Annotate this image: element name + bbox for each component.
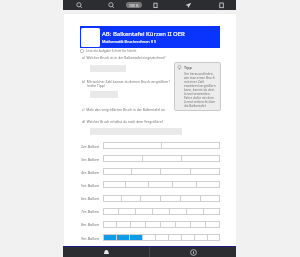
button[interactable] <box>103 208 118 215</box>
button[interactable] <box>162 142 220 149</box>
staticText: d) Welcher Bruch erhältst du nach dem Ve… <box>82 119 164 123</box>
button[interactable] <box>181 195 200 202</box>
button[interactable] <box>187 208 203 215</box>
button[interactable] <box>204 208 220 215</box>
button[interactable] <box>191 168 220 175</box>
button[interactable] <box>197 181 220 188</box>
button[interactable] <box>136 208 152 215</box>
button[interactable]: Download <box>217 1 225 9</box>
button[interactable] <box>103 195 121 202</box>
button[interactable] <box>117 221 130 228</box>
button[interactable] <box>146 221 160 228</box>
button[interactable]: Tipp <box>174 62 221 111</box>
button[interactable] <box>161 168 190 175</box>
button[interactable] <box>149 181 172 188</box>
staticText: c) Male den vergrößerten Bruch in der Ba… <box>82 107 166 111</box>
button[interactable] <box>201 195 220 202</box>
staticText: Mathematik Bruchrechnen R 5 <box>102 39 157 44</box>
button[interactable] <box>117 234 129 241</box>
button[interactable] <box>126 181 148 188</box>
button[interactable]: 100 % <box>126 2 142 8</box>
button[interactable] <box>132 168 160 175</box>
staticText: 8er-Balken <box>81 222 100 227</box>
button[interactable] <box>103 168 131 175</box>
staticText: 5er-Balken <box>81 183 100 188</box>
button[interactable] <box>131 221 145 228</box>
button[interactable]: Print <box>151 1 159 9</box>
staticText: AB: Balkentafel Kürzen II OER <box>102 30 185 38</box>
button[interactable] <box>103 221 116 228</box>
staticText: 2er-Balken <box>81 144 100 149</box>
button[interactable] <box>170 208 186 215</box>
staticText: Um herauszufinden, wie man einen Bruch m… <box>184 72 217 108</box>
button[interactable] <box>103 142 161 149</box>
button[interactable]: Info <box>150 247 236 257</box>
button[interactable] <box>143 155 181 162</box>
staticText: 3er-Balken <box>81 157 100 162</box>
button[interactable]: AB: Balkentafel Kürzen II OER <box>80 26 220 48</box>
button[interactable]: Upload <box>63 247 149 257</box>
staticText: 9er-Balken <box>81 236 100 241</box>
button[interactable] <box>182 155 220 162</box>
button[interactable]: Zoom in <box>75 1 83 9</box>
button[interactable]: Share <box>184 1 192 9</box>
staticText: 100 % <box>129 3 139 8</box>
staticText: Löse die Aufgabe Schritt für Schritt <box>86 49 137 53</box>
button[interactable] <box>161 195 180 202</box>
button[interactable] <box>103 234 116 241</box>
button[interactable] <box>103 155 142 162</box>
button[interactable]: Zoom out <box>107 1 115 9</box>
staticText: 6er-Balken <box>81 196 100 201</box>
staticText: (siehe Tipp) <box>87 83 105 87</box>
button[interactable] <box>208 234 220 241</box>
button[interactable] <box>176 221 190 228</box>
button[interactable] <box>141 195 160 202</box>
staticText: 7er-Balken <box>81 209 100 214</box>
staticText: b) Mit welcher Zahl kannst du deinen Bru… <box>82 79 170 83</box>
button[interactable] <box>169 234 181 241</box>
staticText: a) Welcher Bruch ist in der Balkentafel … <box>82 55 166 59</box>
button[interactable] <box>156 234 168 241</box>
button[interactable] <box>103 181 125 188</box>
staticText: Tipp <box>184 65 192 70</box>
button[interactable] <box>161 221 175 228</box>
button[interactable] <box>143 234 155 241</box>
staticText: 4er-Balken <box>81 170 100 175</box>
button[interactable] <box>119 208 135 215</box>
button[interactable] <box>130 234 142 241</box>
button[interactable] <box>153 208 169 215</box>
button[interactable] <box>122 195 140 202</box>
button[interactable] <box>195 234 207 241</box>
button[interactable] <box>206 221 220 228</box>
button[interactable] <box>182 234 194 241</box>
button[interactable] <box>173 181 196 188</box>
button[interactable] <box>191 221 205 228</box>
